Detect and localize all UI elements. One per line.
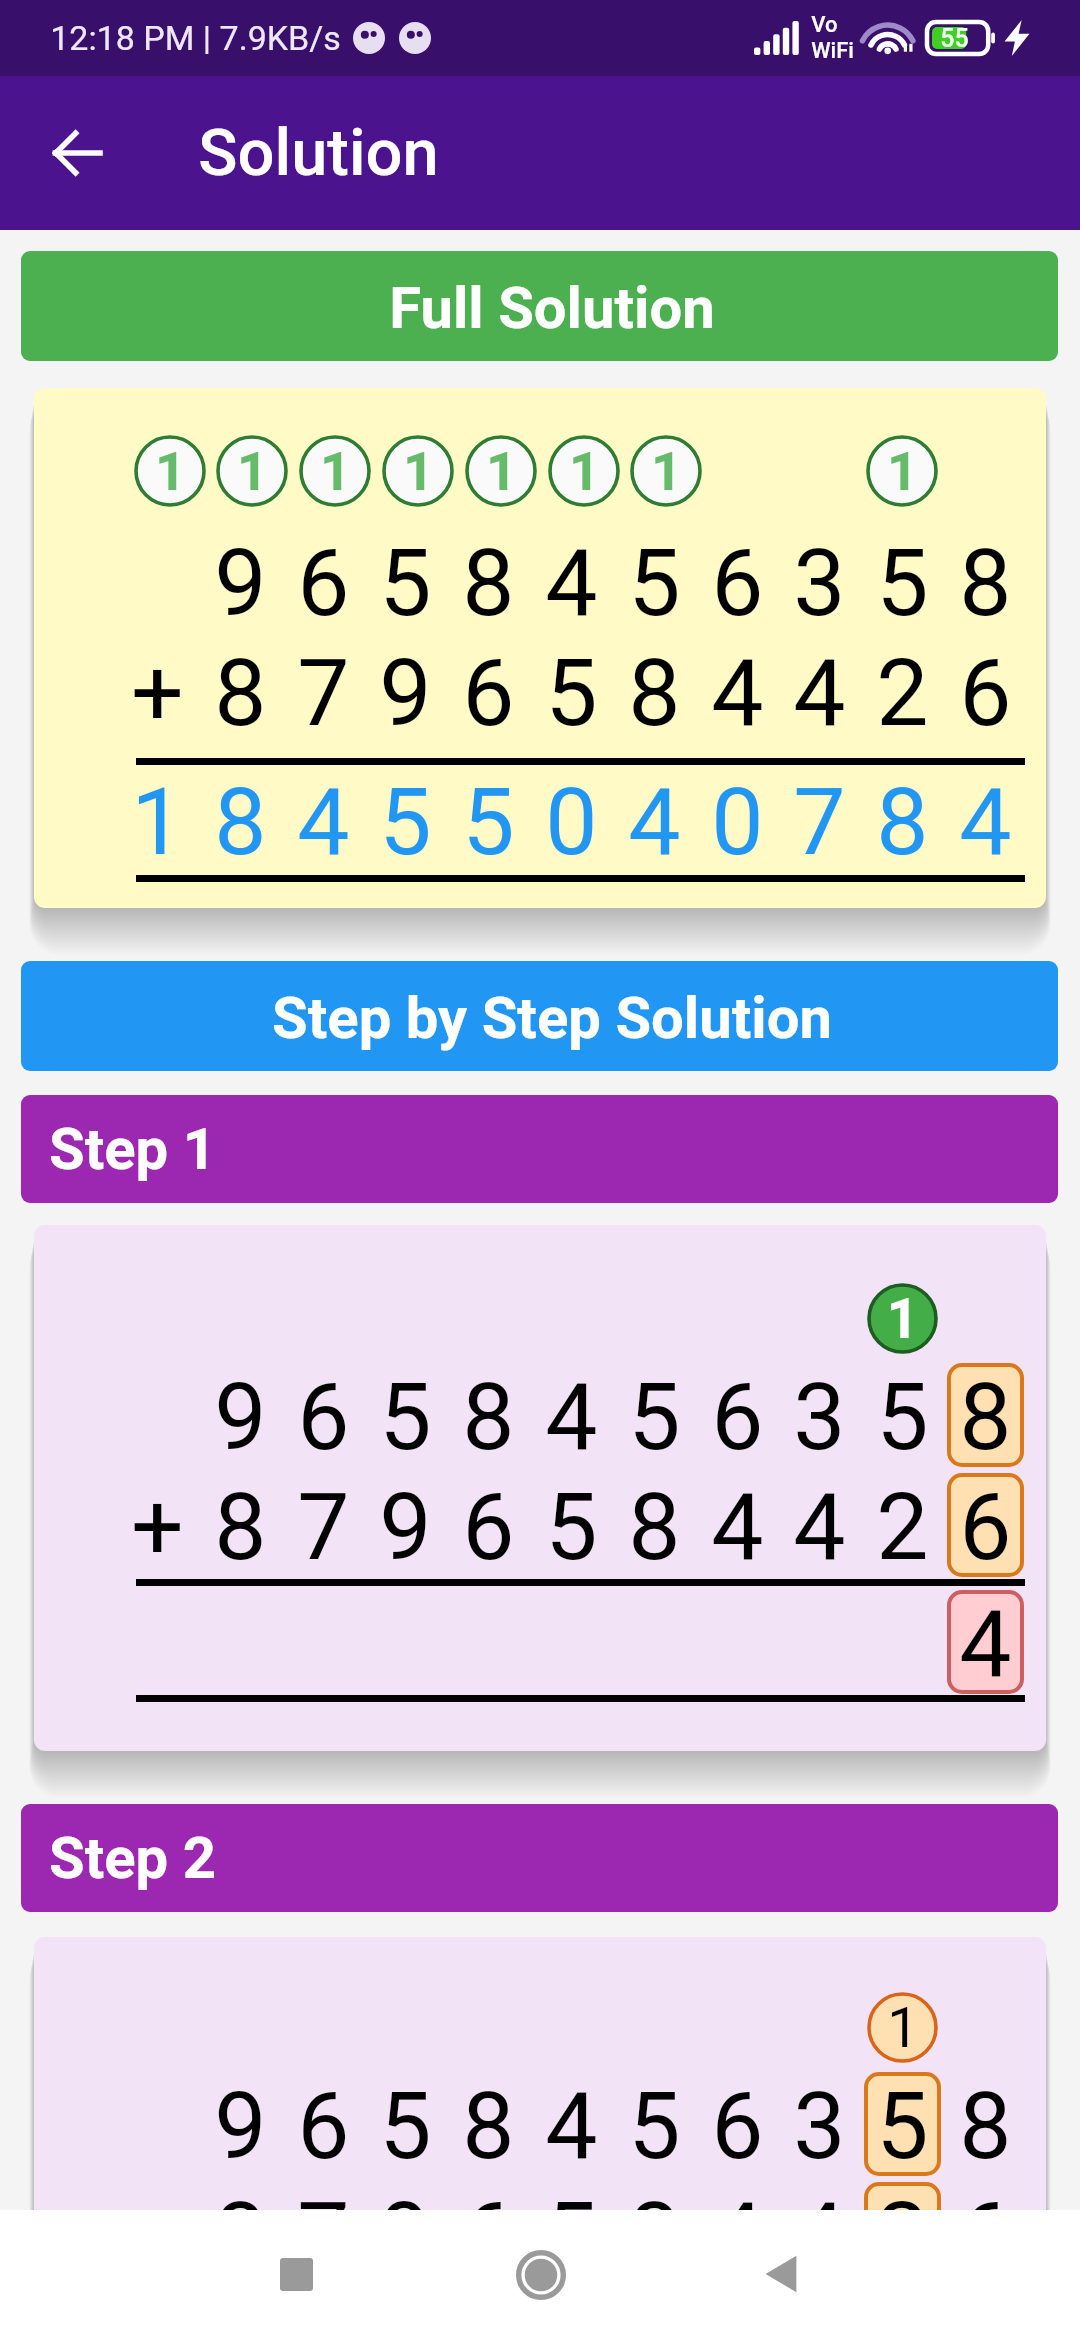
staticText: 8	[959, 1363, 1012, 1472]
staticText: 7	[297, 1473, 350, 1582]
staticText: 8	[959, 2072, 1012, 2181]
staticText: 9	[214, 2072, 267, 2181]
staticText: 3	[793, 2072, 846, 2181]
staticText: 5	[876, 529, 929, 638]
staticText: 6	[959, 2182, 1012, 2291]
staticText: 7	[793, 768, 846, 877]
staticText: 9	[379, 639, 432, 748]
button[interactable]: Recent apps	[241, 2219, 351, 2329]
staticText: 5	[379, 529, 432, 638]
staticText: 1	[569, 440, 600, 503]
staticText: 1	[237, 440, 268, 503]
staticText: 6	[462, 1473, 515, 1582]
staticText: 1	[320, 440, 351, 503]
staticText: 5	[628, 1363, 681, 1472]
staticText: 4	[793, 2182, 846, 2291]
button[interactable]: Home	[486, 2220, 596, 2330]
staticText: 8	[214, 2182, 267, 2291]
staticText: 1	[131, 768, 184, 877]
staticText: 2	[876, 1473, 929, 1582]
staticText: 9	[214, 529, 267, 638]
staticText: 8	[628, 1473, 681, 1582]
staticText: 4	[545, 1363, 598, 1472]
staticText: 55	[940, 24, 969, 53]
staticText: 4	[711, 639, 764, 748]
staticText: Solution	[198, 115, 439, 191]
button[interactable]: 1	[34, 1225, 1046, 1751]
staticText: 6	[711, 1363, 764, 1472]
staticText: 3	[793, 1363, 846, 1472]
button[interactable]: Step 1	[21, 1095, 1058, 1203]
staticText: 2	[876, 2182, 929, 2291]
staticText: 8	[462, 1363, 515, 1472]
staticText: +	[131, 1473, 184, 1582]
staticText: 5	[545, 1473, 598, 1582]
button[interactable]: Navigate up	[43, 119, 111, 187]
staticText: 1	[887, 1995, 919, 2061]
staticText: 1	[651, 440, 682, 503]
staticText: +	[131, 2182, 184, 2291]
button[interactable]: Back	[726, 2219, 836, 2329]
staticText: 4	[628, 768, 681, 877]
staticText: 4	[297, 768, 350, 877]
staticText: 6	[297, 2072, 350, 2181]
staticText: 1	[886, 1286, 919, 1352]
staticText: 12:18 PM | 7.9KB/s	[50, 18, 341, 58]
staticText: 9	[214, 1363, 267, 1472]
button[interactable]: 1	[34, 1937, 1046, 2340]
staticText: 4	[959, 1590, 1012, 1699]
staticText: 8	[214, 768, 267, 877]
staticText: 3	[793, 529, 846, 638]
staticText: 1	[403, 440, 434, 503]
staticText: 5	[379, 2072, 432, 2181]
staticText: 4	[545, 2072, 598, 2181]
staticText: 6	[711, 2072, 764, 2181]
staticText: 5	[876, 2072, 929, 2181]
staticText: 7	[297, 639, 350, 748]
staticText: Step by Step Solution	[272, 984, 832, 1052]
staticText: WiFi	[811, 38, 854, 64]
staticText: 4	[545, 529, 598, 638]
staticText: 2	[876, 639, 929, 748]
staticText: 8	[876, 768, 929, 877]
staticText: 4	[793, 1473, 846, 1582]
staticText: 5	[379, 1363, 432, 1472]
button[interactable]: Step by Step Solution	[21, 961, 1058, 1071]
staticText: 1	[486, 440, 517, 503]
staticText: 6	[297, 529, 350, 638]
staticText: 5	[545, 2182, 598, 2291]
staticText: 6	[711, 529, 764, 638]
staticText: 6	[959, 1473, 1012, 1582]
staticText: 0	[545, 768, 598, 877]
staticText: 8	[462, 529, 515, 638]
staticText: 9	[379, 1473, 432, 1582]
staticText: 0	[711, 768, 764, 877]
staticText: Vo	[811, 12, 838, 38]
staticText: +	[131, 639, 184, 748]
staticText: 9	[379, 2182, 432, 2291]
staticText: Step 1	[49, 1115, 216, 1183]
staticText: 6	[462, 2182, 515, 2291]
staticText: 8	[214, 639, 267, 748]
staticText: Full Solution	[389, 274, 715, 342]
button[interactable]: Full Solution	[21, 251, 1058, 361]
staticText: 8	[462, 2072, 515, 2181]
staticText: 5	[876, 1363, 929, 1472]
staticText: 1	[155, 440, 186, 503]
button[interactable]: 1	[34, 388, 1046, 908]
staticText: 5	[628, 529, 681, 638]
staticText: 8	[628, 639, 681, 748]
staticText: 5	[545, 639, 598, 748]
staticText: 6	[959, 639, 1012, 748]
staticText: 7	[297, 2182, 350, 2291]
staticText: 4	[959, 768, 1012, 877]
staticText: 4	[711, 2182, 764, 2291]
button[interactable]: Step 2	[21, 1804, 1058, 1912]
staticText: 5	[379, 768, 432, 877]
staticText: 8	[214, 1473, 267, 1582]
staticText: Step 2	[49, 1824, 216, 1892]
staticText: 4	[711, 1473, 764, 1582]
staticText: 5	[462, 768, 515, 877]
staticText: 8	[628, 2182, 681, 2291]
staticText: 4	[793, 639, 846, 748]
